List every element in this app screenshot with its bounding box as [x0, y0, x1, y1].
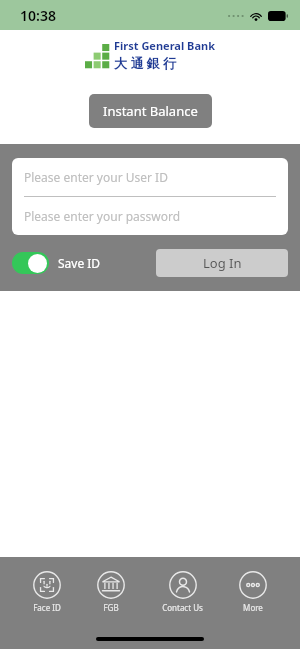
button[interactable]: Save ID [12, 252, 101, 274]
button[interactable]: Face ID [29, 569, 65, 615]
staticText: More [243, 602, 263, 613]
staticText: Please enter your password [24, 208, 181, 224]
button[interactable]: Please enter your User ID [12, 158, 288, 196]
button[interactable]: Contact Us [158, 569, 207, 615]
button[interactable]: Instant Balance [89, 94, 212, 128]
staticText: Face ID [33, 602, 61, 613]
button[interactable]: More [235, 569, 271, 615]
staticText: Contact Us [162, 602, 203, 613]
staticText: First General Bank [114, 38, 215, 53]
staticText: FGB [103, 602, 119, 613]
button[interactable]: FGB [93, 569, 129, 615]
staticText: Instant Balance [103, 102, 198, 120]
staticText: Log In [203, 254, 242, 272]
button[interactable]: Log In [156, 249, 288, 277]
staticText: Please enter your User ID [24, 169, 168, 185]
button[interactable]: Please enter your password [12, 197, 288, 235]
staticText: 大 通 銀 行 [114, 54, 177, 72]
staticText: 10:38 [20, 6, 56, 25]
staticText: Save ID [58, 255, 101, 271]
